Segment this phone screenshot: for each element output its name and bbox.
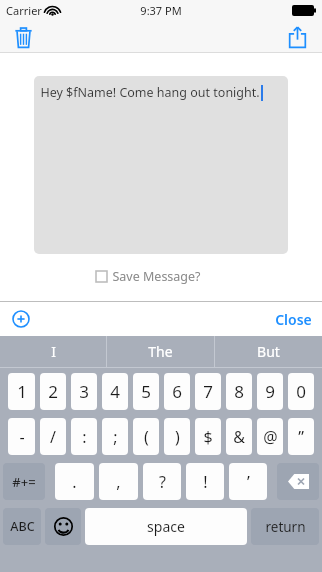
button[interactable]: ABC xyxy=(3,508,41,545)
staticText: @ xyxy=(263,426,278,448)
button[interactable]: 5 xyxy=(133,373,159,410)
button[interactable]: 9 xyxy=(257,373,283,410)
staticText: return xyxy=(265,518,306,536)
button[interactable]: 7 xyxy=(195,373,221,410)
staticText: 6 xyxy=(172,380,182,403)
button[interactable]: 4 xyxy=(102,373,128,410)
button[interactable]: ! xyxy=(186,463,224,500)
button[interactable]: : xyxy=(71,418,97,455)
button[interactable]: ) xyxy=(164,418,190,455)
button[interactable]: - xyxy=(8,418,35,455)
button[interactable]: Add xyxy=(8,306,34,332)
button[interactable]: Backspace xyxy=(277,463,319,500)
button[interactable]: 0 xyxy=(288,373,314,410)
button[interactable]: $ xyxy=(195,418,221,455)
button[interactable]: ? xyxy=(143,463,181,500)
staticText: $ xyxy=(203,426,213,448)
staticText: ; xyxy=(113,426,118,448)
staticText: 4 xyxy=(110,380,120,403)
staticText: . xyxy=(72,471,77,493)
staticText: , xyxy=(116,471,121,493)
button[interactable]: , xyxy=(99,463,138,500)
button[interactable]: ; xyxy=(102,418,128,455)
button[interactable]: The xyxy=(107,336,214,367)
button[interactable]: space xyxy=(85,508,247,545)
staticText: ? xyxy=(159,471,166,493)
button[interactable]: 3 xyxy=(71,373,97,410)
staticText: I xyxy=(51,342,56,361)
staticText: 0 xyxy=(296,380,306,403)
staticText: Hey $fName! Come hang out tonight. xyxy=(40,84,260,101)
button[interactable]: Emoji xyxy=(45,508,81,545)
button[interactable]: Save Message? xyxy=(96,268,201,285)
button[interactable]: Hey $fName! Come hang out tonight. xyxy=(34,76,288,254)
staticText: : xyxy=(82,426,87,448)
button[interactable]: Delete xyxy=(6,22,40,52)
button[interactable]: 6 xyxy=(164,373,190,410)
staticText: 7 xyxy=(203,380,213,403)
staticText: 3 xyxy=(79,380,89,403)
staticText: ’ xyxy=(247,471,250,493)
staticText: 1 xyxy=(17,380,27,403)
staticText: 9:37 PM xyxy=(140,3,182,18)
staticText: The xyxy=(148,342,173,361)
staticText: ( xyxy=(144,426,149,448)
staticText: 5 xyxy=(141,380,151,403)
button[interactable]: . xyxy=(55,463,94,500)
button[interactable]: Share xyxy=(280,22,314,52)
button[interactable]: @ xyxy=(257,418,283,455)
button[interactable]: #+= xyxy=(3,463,45,500)
staticText: ” xyxy=(298,426,304,448)
staticText: #+= xyxy=(12,473,36,491)
staticText: & xyxy=(233,426,245,448)
staticText: ABC xyxy=(10,518,35,535)
staticText: ! xyxy=(203,471,208,493)
button[interactable]: But xyxy=(215,336,322,367)
button[interactable]: ” xyxy=(288,418,314,455)
staticText: Save Message? xyxy=(112,268,201,285)
staticText: 2 xyxy=(48,380,58,403)
button[interactable]: / xyxy=(40,418,66,455)
staticText: Carrier xyxy=(6,3,42,18)
staticText: / xyxy=(50,426,56,448)
button[interactable]: 1 xyxy=(8,373,35,410)
staticText: 8 xyxy=(234,380,244,403)
button[interactable]: ’ xyxy=(229,463,267,500)
button[interactable]: I xyxy=(0,336,106,367)
button[interactable]: ( xyxy=(133,418,159,455)
staticText: space xyxy=(147,517,185,536)
staticText: ) xyxy=(175,426,180,448)
staticText: But xyxy=(257,342,280,361)
staticText: 9 xyxy=(265,380,275,403)
button[interactable]: Close xyxy=(275,310,312,329)
button[interactable]: & xyxy=(226,418,252,455)
staticText: Close xyxy=(275,310,312,329)
button[interactable]: 2 xyxy=(40,373,66,410)
button[interactable]: 8 xyxy=(226,373,252,410)
staticText: - xyxy=(19,426,25,448)
button[interactable]: return xyxy=(251,508,319,545)
